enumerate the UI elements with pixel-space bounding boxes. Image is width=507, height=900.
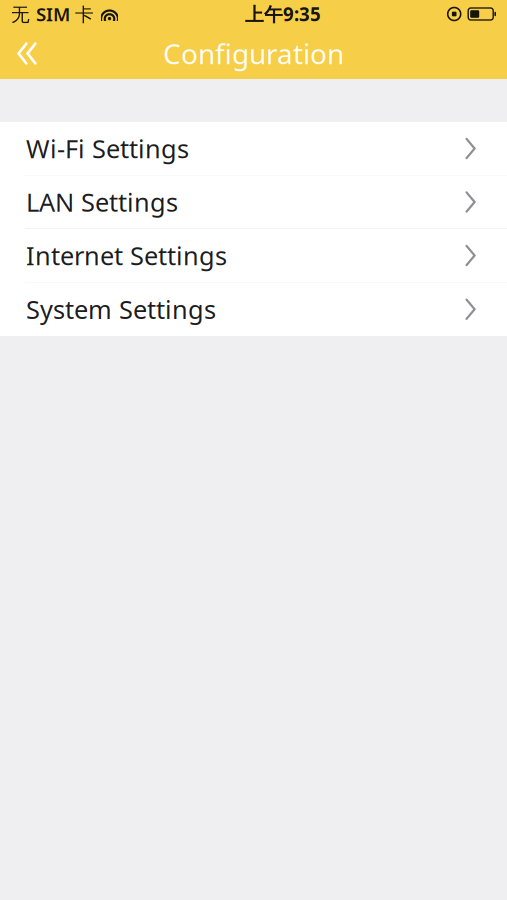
button[interactable]: LAN Settings [0,175,507,229]
staticText: LAN Settings [26,185,178,219]
button[interactable]: System Settings [0,282,507,336]
staticText: Wi-Fi Settings [26,132,189,165]
staticText: System Settings [26,292,216,326]
button[interactable]: Wi-Fi Settings [0,122,507,175]
button[interactable]: Internet Settings [0,229,507,282]
staticText: Configuration [163,35,344,72]
staticText: 无 SIM 卡 [11,2,94,26]
staticText: Internet Settings [26,239,227,272]
button[interactable]: Back [0,28,54,79]
staticText: 上午9:35 [245,2,321,26]
